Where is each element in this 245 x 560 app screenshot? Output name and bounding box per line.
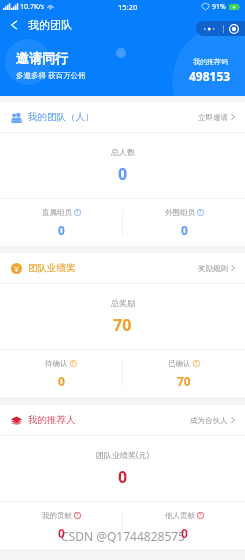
staticText: 我的推荐人	[28, 414, 76, 426]
button[interactable]: 团队业绩奖(元)	[0, 436, 245, 501]
staticText: 0	[118, 163, 128, 185]
staticText: 直属组员	[42, 208, 72, 217]
button[interactable]: 直属组员	[0, 199, 122, 246]
button[interactable]: 我的团队（人）	[0, 102, 245, 132]
staticText: ?	[76, 209, 79, 216]
staticText: ?	[199, 512, 202, 519]
staticText: 成为合伙人	[190, 416, 228, 425]
staticText: ?	[76, 512, 79, 519]
staticText: 0	[118, 466, 128, 488]
staticText: 团队业绩奖(元)	[96, 449, 149, 460]
staticText: 0	[181, 222, 188, 238]
staticText: ?	[72, 360, 75, 367]
staticText: 0	[58, 373, 65, 389]
button[interactable]: 外围组员	[123, 199, 245, 246]
staticText: ?	[199, 209, 202, 216]
staticText: 0	[58, 222, 65, 238]
staticText: 邀请同行	[16, 50, 68, 66]
button[interactable]: Close	[224, 21, 244, 36]
staticText: 10.7K/s	[20, 2, 45, 12]
staticText: 15:20	[118, 2, 138, 12]
staticText: 0	[58, 525, 65, 541]
staticText: 我的团队（人）	[28, 111, 95, 123]
staticText: ?	[195, 360, 198, 367]
staticText: 我的贡献	[42, 511, 72, 520]
staticText: 我的推荐码	[193, 57, 228, 66]
button[interactable]: 已确认	[123, 350, 245, 397]
staticText: CSDN @Q1744828575	[61, 528, 185, 544]
button[interactable]: 总奖励	[0, 284, 245, 349]
button[interactable]: 团队业绩奖	[0, 253, 245, 283]
staticText: 多邀多得 获百万公佣	[16, 70, 86, 80]
button[interactable]: 我的推荐人	[0, 405, 245, 435]
staticText: 外围组员	[165, 208, 195, 217]
staticText: 已确认	[168, 359, 191, 368]
button[interactable]: Recents	[196, 21, 223, 36]
staticText: 0	[181, 525, 188, 541]
staticText: 70	[113, 314, 132, 336]
staticText: 立即邀请	[198, 113, 228, 122]
staticText: 498153	[189, 68, 231, 84]
button[interactable]: 待确认	[0, 350, 122, 397]
button[interactable]: 我的贡献	[0, 502, 122, 549]
staticText: 他人贡献	[165, 511, 195, 520]
staticText: 待确认	[45, 359, 68, 368]
button[interactable]: Back	[5, 16, 23, 34]
button[interactable]: 他人贡献	[123, 502, 245, 549]
staticText: 总人数	[111, 147, 135, 157]
staticText: 奖励规则	[198, 264, 228, 273]
staticText: 团队业绩奖	[28, 262, 76, 274]
staticText: 我的团队	[28, 18, 72, 32]
staticText: 91%	[212, 2, 226, 12]
button[interactable]: 总人数	[0, 133, 245, 198]
staticText: 总奖励	[111, 298, 135, 308]
staticText: 70	[177, 373, 191, 389]
